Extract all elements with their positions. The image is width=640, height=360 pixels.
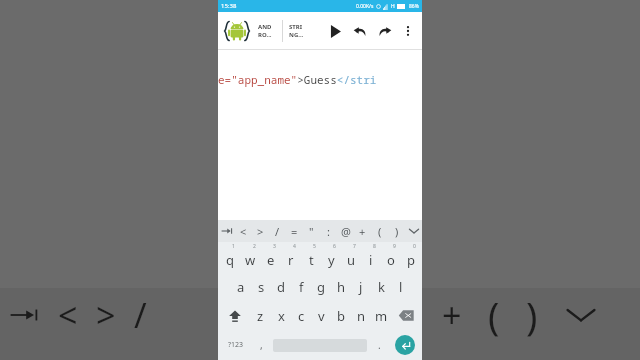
button[interactable]: / xyxy=(269,220,286,242)
button[interactable]: 0 xyxy=(401,242,421,272)
button[interactable]: AND xyxy=(258,23,282,39)
staticText: ) xyxy=(395,224,399,239)
button[interactable]: 3 xyxy=(261,242,281,272)
staticText: o xyxy=(387,251,395,269)
button[interactable]: s xyxy=(251,272,271,301)
staticText: STRI xyxy=(289,23,303,31)
button[interactable]: 2 xyxy=(240,242,261,272)
button[interactable]: k xyxy=(371,272,391,301)
staticText: u xyxy=(347,251,356,269)
button[interactable]: More options xyxy=(400,23,416,39)
staticText: 0 xyxy=(413,243,416,250)
staticText: 0.00K/s xyxy=(356,3,374,10)
staticText: l xyxy=(399,278,403,296)
staticText: 2 xyxy=(253,243,256,250)
staticText: 7 xyxy=(353,243,356,250)
staticText: 6 xyxy=(333,243,336,250)
staticText: c xyxy=(298,307,305,325)
staticText: < xyxy=(240,224,247,239)
staticText: H xyxy=(391,3,395,10)
staticText: w xyxy=(245,251,256,269)
button[interactable]: n xyxy=(351,301,371,330)
button[interactable]: + xyxy=(354,220,371,242)
staticText: e xyxy=(267,251,275,269)
staticText: 9 xyxy=(393,243,396,250)
button[interactable]: 4 xyxy=(281,242,301,272)
button[interactable]: b xyxy=(331,301,351,330)
button[interactable]: f xyxy=(291,272,311,301)
button[interactable]: STRI xyxy=(289,23,313,39)
button[interactable]: h xyxy=(331,272,351,301)
button[interactable]: z xyxy=(250,301,271,330)
button[interactable]: Undo xyxy=(352,23,368,39)
button[interactable]: : xyxy=(320,220,337,242)
staticText: = xyxy=(291,224,298,239)
button[interactable]: d xyxy=(271,272,291,301)
button[interactable]: Tab xyxy=(218,220,235,242)
button[interactable]: Hide keyboard xyxy=(405,220,422,242)
staticText: : xyxy=(327,224,330,239)
staticText: ( xyxy=(378,224,382,239)
staticText: g xyxy=(317,278,325,296)
staticText: , xyxy=(260,338,263,352)
button[interactable]: , xyxy=(251,330,271,360)
staticText: 4 xyxy=(293,243,296,250)
staticText: 15:38 xyxy=(221,2,237,10)
button[interactable]: . xyxy=(369,330,389,360)
button[interactable]: l xyxy=(391,272,411,301)
staticText: 1 xyxy=(232,243,235,250)
staticText: d xyxy=(277,278,285,296)
button[interactable]: c xyxy=(291,301,311,330)
staticText: 86% xyxy=(409,3,419,10)
staticText: q xyxy=(226,251,234,269)
staticText: 8 xyxy=(373,243,376,250)
button[interactable]: 1 xyxy=(219,242,240,272)
button[interactable]: 6 xyxy=(321,242,341,272)
staticText: h xyxy=(337,278,346,296)
button[interactable]: App logo xyxy=(222,16,252,46)
staticText: y xyxy=(328,251,335,269)
button[interactable]: 8 xyxy=(361,242,381,272)
button[interactable]: x xyxy=(271,301,291,330)
button[interactable]: m xyxy=(371,301,391,330)
button[interactable]: Enter xyxy=(395,335,415,355)
staticText: p xyxy=(407,251,415,269)
staticText: ?123 xyxy=(228,340,244,350)
button[interactable]: ?123 xyxy=(220,330,251,360)
button[interactable]: Redo xyxy=(377,23,393,39)
button[interactable]: Backspace xyxy=(391,301,421,330)
staticText: v xyxy=(318,307,325,325)
button[interactable]: 5 xyxy=(301,242,321,272)
staticText: n xyxy=(357,307,366,325)
staticText: ) xyxy=(526,289,538,341)
staticText: " xyxy=(309,224,314,239)
staticText: x xyxy=(278,307,285,325)
staticText: b xyxy=(337,307,345,325)
staticText: f xyxy=(299,278,304,296)
button[interactable]: " xyxy=(303,220,320,242)
button[interactable]: 9 xyxy=(381,242,401,272)
staticText: k xyxy=(378,278,385,296)
button[interactable]: v xyxy=(311,301,331,330)
button[interactable]: = xyxy=(286,220,303,242)
button[interactable]: j xyxy=(351,272,371,301)
staticText: ( xyxy=(488,289,500,341)
button[interactable]: ( xyxy=(371,220,388,242)
staticText: a xyxy=(237,278,245,296)
staticText: s xyxy=(258,278,265,296)
button[interactable]: @ xyxy=(337,220,354,242)
staticText: 5 xyxy=(313,243,316,250)
button[interactable]: 7 xyxy=(341,242,361,272)
staticText: < xyxy=(58,292,78,338)
button[interactable]: ) xyxy=(388,220,405,242)
button[interactable]: Shift xyxy=(219,301,250,330)
staticText: @ xyxy=(341,224,351,239)
button[interactable]: Run xyxy=(327,23,343,39)
staticText: NG... xyxy=(289,31,304,39)
button[interactable]: a xyxy=(230,272,251,301)
button[interactable]: > xyxy=(252,220,269,242)
button[interactable]: g xyxy=(311,272,331,301)
button[interactable]: < xyxy=(235,220,252,242)
staticText: . xyxy=(378,338,381,352)
